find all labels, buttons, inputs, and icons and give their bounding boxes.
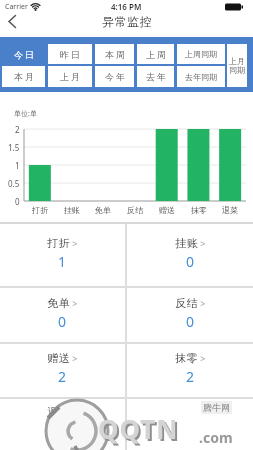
staticText: 退菜 [222,205,238,215]
button[interactable]: 上月 同期 [227,44,247,87]
staticText: 打折 [32,205,48,215]
staticText: 单位:单 [14,109,37,119]
staticText: 去年 [145,71,167,82]
staticText: 打折 [47,236,70,250]
staticText: 反结 [175,296,198,310]
staticText: 挂账 [175,236,198,250]
staticText: 0 [186,252,195,271]
staticText: 去年同期 [185,72,217,82]
button[interactable]: 本周 [95,44,134,64]
button[interactable]: 上周同期 [177,44,225,64]
button[interactable]: 本月 [2,66,45,87]
staticText: 0.5 [8,178,20,188]
staticText: > [70,237,78,249]
staticText: 异常监控 [102,14,152,29]
staticText: 免单 [95,205,111,215]
button[interactable]: 反结 [127,288,253,342]
staticText: 抹零 [191,205,207,215]
staticText: 本月 [13,71,35,82]
staticText: > [198,237,206,249]
staticText: 抹零 [175,351,198,365]
button[interactable]: 赠送 [0,344,125,397]
staticText: 免单 [47,296,70,310]
staticText: > [70,297,78,309]
staticText: 上周 [145,49,167,60]
button[interactable]: 上月 [48,66,92,87]
staticText: 0 [15,196,20,206]
staticText: > [198,352,206,364]
staticText: 1 [15,160,20,170]
staticText: 上月 [59,71,81,82]
staticText: QQTN [98,411,179,446]
staticText: 上月 同期 [229,56,245,76]
staticText: 腾牛网 [203,402,230,413]
staticText: .com [199,428,233,447]
staticText: 今年 [104,71,126,82]
button[interactable]: 昨日 [48,44,92,64]
staticText: 退菜 [47,405,70,419]
staticText: 本周 [104,49,126,60]
staticText: 上周同期 [185,49,217,59]
staticText: 0 [186,312,195,331]
button[interactable]: 今年 [95,66,134,87]
staticText: 2 [186,367,195,386]
button[interactable]: 挂账 [127,224,253,286]
staticText: > [70,352,78,364]
staticText: 4:16 PM [111,1,142,12]
button[interactable]: 上周 [137,44,174,64]
button[interactable]: 去年同期 [177,66,225,87]
staticText: 挂账 [64,205,80,215]
staticText: 1.5 [8,142,20,152]
button[interactable]: 去年 [137,66,174,87]
button[interactable]: 今日 [2,44,45,64]
button[interactable]: 打折 [0,224,125,286]
button[interactable] [4,13,20,30]
staticText: > [198,297,206,309]
staticText: Carrier [5,2,28,12]
staticText: 2 [15,124,20,134]
staticText: 赠送 [159,205,175,215]
button[interactable]: 退菜 [0,399,125,450]
staticText: 反结 [127,205,143,215]
button[interactable]: 抹零 [127,344,253,397]
staticText: 赠送 [47,351,70,365]
staticText: 今日 [13,49,35,60]
staticText: 2 [58,421,67,440]
staticText: 0 [58,312,67,331]
button[interactable]: 免单 [0,288,125,342]
staticText: 1 [58,252,67,271]
staticText: 昨日 [59,49,81,60]
staticText: 2 [58,367,67,386]
staticText: QQTN [100,413,181,448]
